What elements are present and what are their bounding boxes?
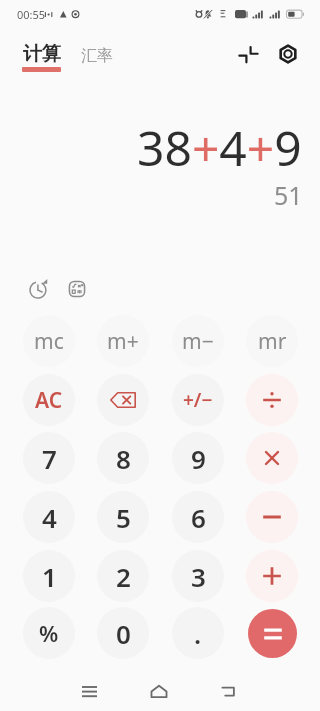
staticText: 4 xyxy=(42,500,57,535)
staticText: . xyxy=(194,616,202,651)
button[interactable]: mc xyxy=(23,315,75,367)
staticText: 2 xyxy=(116,559,131,594)
button[interactable]: Home xyxy=(143,675,175,707)
button[interactable]: 8 xyxy=(97,432,149,484)
button[interactable]: 9 xyxy=(172,432,224,484)
button[interactable]: 5 xyxy=(97,491,149,543)
button[interactable]: Collapse xyxy=(234,40,262,68)
staticText: m+ xyxy=(107,327,139,356)
button[interactable]: 1 xyxy=(23,550,75,602)
button[interactable]: Settings xyxy=(274,40,302,68)
button[interactable]: % xyxy=(23,607,75,659)
button[interactable]: AC xyxy=(23,374,75,426)
staticText: 9 xyxy=(191,441,206,476)
staticText: 7 xyxy=(42,441,57,476)
button[interactable]: History xyxy=(24,275,52,303)
button[interactable]: 2 xyxy=(97,550,149,602)
button[interactable]: 3 xyxy=(172,550,224,602)
staticText: AC xyxy=(35,386,63,415)
button[interactable]: Scientific xyxy=(63,275,91,303)
button[interactable] xyxy=(246,374,298,426)
button[interactable]: 6 xyxy=(172,491,224,543)
button[interactable]: Recents xyxy=(73,675,105,707)
button[interactable]: 0 xyxy=(97,607,149,659)
staticText: mc xyxy=(34,327,64,356)
button[interactable]: m+ xyxy=(97,315,149,367)
button[interactable]: m− xyxy=(172,315,224,367)
button[interactable] xyxy=(246,491,298,543)
staticText: 38+4+9 xyxy=(137,115,302,180)
staticText: 5 xyxy=(116,500,131,535)
staticText: m− xyxy=(182,327,214,356)
button[interactable]: . xyxy=(172,607,224,659)
staticText: 6 xyxy=(191,500,206,535)
button[interactable]: Back xyxy=(212,675,244,707)
button[interactable]: 7 xyxy=(23,432,75,484)
button[interactable]: 4 xyxy=(23,491,75,543)
button[interactable]: +/− xyxy=(172,374,224,426)
button[interactable] xyxy=(248,609,297,658)
staticText: mr xyxy=(258,327,287,356)
button[interactable]: mr xyxy=(246,315,298,367)
button[interactable] xyxy=(97,374,149,426)
staticText: 0 xyxy=(116,616,131,651)
staticText: 计算 xyxy=(23,42,61,66)
staticText: 51 xyxy=(274,178,303,212)
staticText: +/− xyxy=(183,387,213,413)
staticText: 1 xyxy=(42,559,57,594)
staticText: 汇率 xyxy=(81,46,113,66)
staticText: 3 xyxy=(191,559,206,594)
button[interactable]: 汇率 xyxy=(73,42,121,70)
button[interactable] xyxy=(246,550,298,602)
staticText: % xyxy=(39,618,59,648)
staticText: 00:55 xyxy=(17,7,46,22)
staticText: 8 xyxy=(116,441,131,476)
button[interactable]: 计算 xyxy=(14,38,69,76)
button[interactable] xyxy=(246,432,298,484)
